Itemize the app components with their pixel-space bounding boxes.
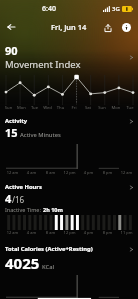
staticText: Mon	[109, 105, 123, 111]
staticText: Sun	[95, 105, 109, 111]
button[interactable]: Activity	[0, 117, 138, 125]
staticText: 12 am	[3, 170, 22, 175]
staticText: Active Minutes	[20, 131, 61, 139]
staticText: 4 am	[22, 170, 41, 175]
staticText: 4 am	[22, 230, 41, 235]
button[interactable]: Active Hours	[0, 183, 138, 191]
staticText: KCal	[42, 263, 55, 271]
button[interactable]: Total Calories (Active+Resting)	[0, 245, 138, 253]
staticText: 3G	[112, 5, 120, 13]
button[interactable]	[0, 142, 138, 170]
staticText: 15	[5, 125, 18, 140]
staticText: 4 pm	[79, 170, 98, 175]
button[interactable]	[0, 74, 138, 105]
staticText: Activity	[5, 117, 129, 125]
staticText: Fri	[67, 105, 81, 111]
button[interactable]: 90	[0, 41, 138, 71]
staticText: Thu	[54, 105, 67, 111]
staticText: /16	[12, 194, 25, 205]
staticText: Mon	[15, 105, 28, 111]
staticText: 8 pm	[98, 230, 117, 235]
staticText: 8 am	[41, 170, 60, 175]
staticText: Inactive Time:	[5, 206, 43, 213]
button[interactable]	[0, 215, 138, 230]
staticText: 12 pm	[60, 230, 79, 235]
staticText: 2h 10m	[43, 206, 63, 213]
staticText: 4025	[5, 253, 40, 273]
staticText: 12 am	[3, 230, 22, 235]
staticText: Wed	[41, 105, 54, 111]
staticText: 90	[5, 43, 18, 58]
staticText: 4	[5, 191, 12, 206]
staticText: 8 am	[41, 230, 60, 235]
button[interactable]: Back	[3, 19, 19, 35]
staticText: Sun	[2, 105, 15, 111]
staticText: 6:40	[42, 4, 56, 14]
button[interactable]	[0, 274, 138, 299]
staticText: Total Calories (Active+Resting)	[5, 245, 129, 253]
staticText: Tue	[123, 105, 137, 111]
staticText: 12 pm	[60, 170, 79, 175]
button[interactable]: Info	[119, 20, 134, 35]
staticText: 11 pm	[117, 230, 136, 235]
button[interactable]: Share	[100, 20, 115, 35]
staticText: Movement Index	[5, 58, 81, 71]
staticText: Fri, Jun 14	[51, 22, 87, 32]
staticText: 4 pm	[79, 230, 98, 235]
staticText: Active Hours	[5, 183, 129, 191]
staticText: 8 pm	[98, 170, 117, 175]
staticText: Tue	[28, 105, 41, 111]
staticText: 12 am	[117, 170, 136, 175]
staticText: Sat	[81, 105, 95, 111]
